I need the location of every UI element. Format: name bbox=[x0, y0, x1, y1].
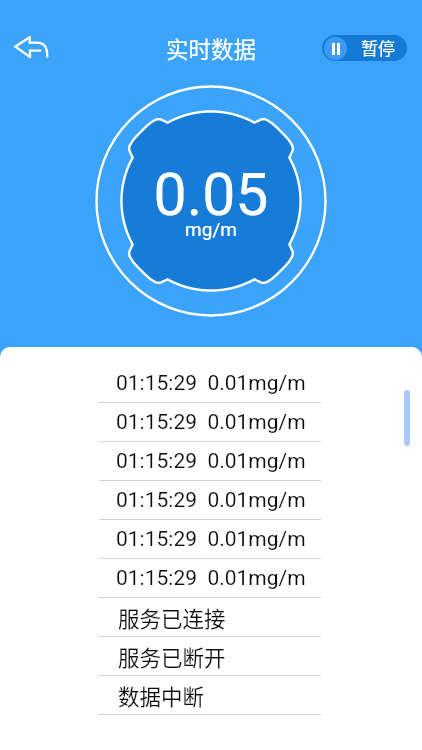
button[interactable]: 01:15:29 0.01mg/m bbox=[0, 559, 422, 597]
staticText: mg/m bbox=[185, 218, 237, 240]
staticText: 暂停 bbox=[361, 35, 395, 60]
staticText: 01:15:29 0.01mg/m bbox=[116, 527, 306, 552]
button[interactable]: 01:15:29 0.01mg/m bbox=[0, 481, 422, 519]
button[interactable]: 服务已连接 bbox=[0, 598, 422, 636]
button[interactable]: 01:15:29 0.01mg/m bbox=[0, 520, 422, 558]
staticText: 实时数据 bbox=[166, 32, 257, 65]
staticText: 01:15:29 0.01mg/m bbox=[116, 371, 306, 396]
button[interactable]: 暂停 bbox=[322, 35, 407, 61]
staticText: 01:15:29 0.01mg/m bbox=[116, 488, 306, 513]
button[interactable]: 服务已断开 bbox=[0, 637, 422, 675]
button[interactable]: 01:15:29 0.01mg/m bbox=[0, 442, 422, 480]
button[interactable]: Back bbox=[4, 27, 58, 67]
staticText: 01:15:29 0.01mg/m bbox=[116, 410, 306, 435]
staticText: 服务已断开 bbox=[118, 641, 226, 672]
staticText: 01:15:29 0.01mg/m bbox=[116, 566, 306, 591]
staticText: 数据中断 bbox=[118, 680, 205, 711]
button[interactable]: 数据中断 bbox=[0, 676, 422, 714]
staticText: 服务已连接 bbox=[118, 602, 226, 633]
button[interactable]: 01:15:29 0.01mg/m bbox=[0, 364, 422, 402]
staticText: 0.05 bbox=[153, 160, 269, 229]
button[interactable]: 01:15:29 0.01mg/m bbox=[0, 403, 422, 441]
staticText: 01:15:29 0.01mg/m bbox=[116, 449, 306, 474]
